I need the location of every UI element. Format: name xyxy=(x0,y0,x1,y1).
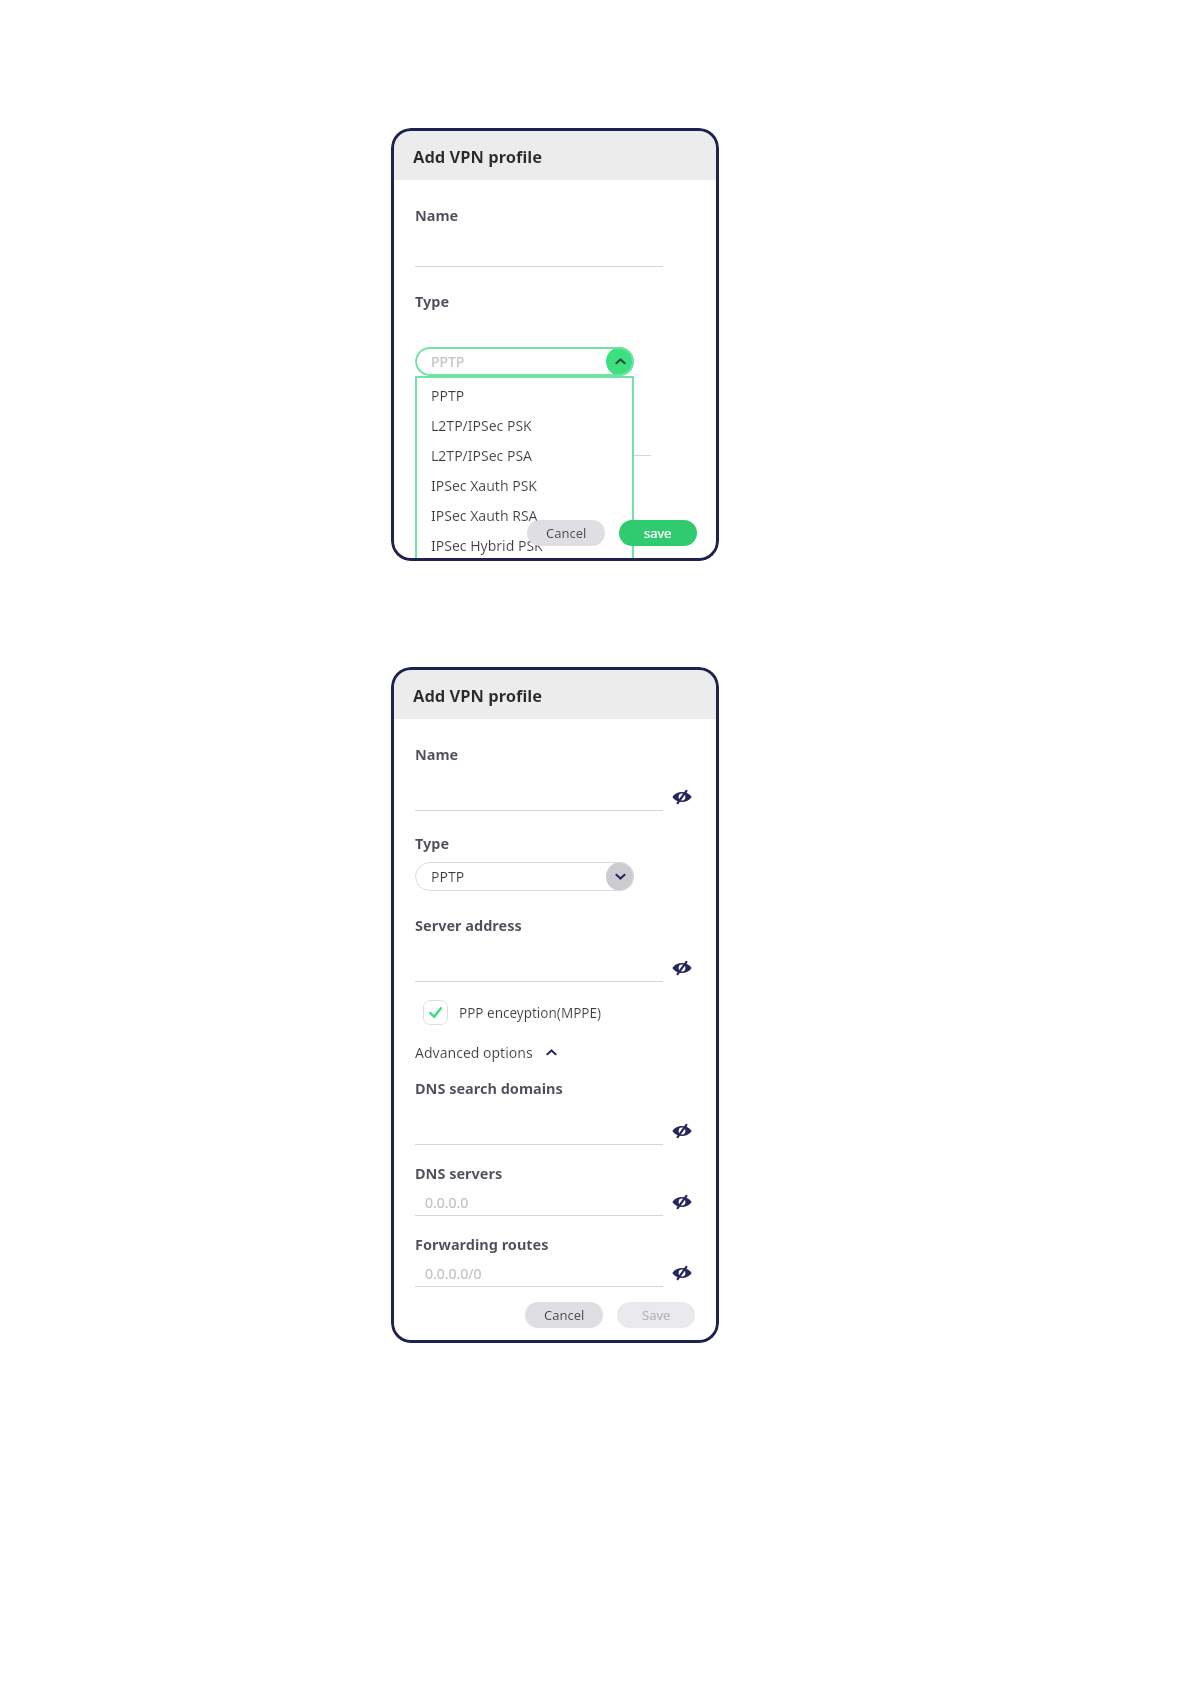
staticText: DNS search domains xyxy=(415,1078,563,1098)
button[interactable]: Cancel xyxy=(525,1302,603,1328)
staticText: L2TP/IPSec PSK xyxy=(431,416,532,435)
staticText: Forwarding routes xyxy=(415,1234,549,1254)
button[interactable]: Toggle visibility xyxy=(669,1260,695,1286)
staticText: DNS servers xyxy=(415,1163,503,1183)
staticText: Cancel xyxy=(544,1306,585,1324)
staticText: Type xyxy=(415,833,450,853)
button[interactable]: IPSec Hybrid PSK xyxy=(415,530,634,558)
staticText: Advanced options xyxy=(415,1043,533,1062)
button[interactable]: Toggle visibility xyxy=(669,955,695,981)
button[interactable]: Cancel xyxy=(527,520,605,546)
staticText: Name xyxy=(415,744,459,764)
staticText: Name xyxy=(415,205,459,225)
button[interactable]: L2TP/IPSec PSK xyxy=(415,410,634,440)
button[interactable]: save xyxy=(619,520,697,546)
button[interactable]: IPSec Xauth PSK xyxy=(415,470,634,500)
staticText: L2TP/IPSec PSA xyxy=(431,446,533,465)
button[interactable]: PPP enceyption(MPPE) xyxy=(423,1000,602,1025)
staticText: PPTP xyxy=(431,386,465,405)
button[interactable]: Advanced options xyxy=(415,1043,558,1062)
staticText: Cancel xyxy=(546,524,587,542)
button[interactable]: PPTP xyxy=(415,862,634,891)
button[interactable]: Save xyxy=(617,1302,695,1328)
button[interactable]: IPSec Xauth RSA xyxy=(415,500,634,530)
staticText: IPSec Xauth PSK xyxy=(431,476,538,495)
staticText: PPTP xyxy=(431,867,465,886)
button[interactable]: Toggle visibility xyxy=(669,1118,695,1144)
staticText: Server address xyxy=(415,915,522,935)
button[interactable]: L2TP/IPSec PSA xyxy=(415,440,634,470)
staticText: 0.0.0.0/0 xyxy=(425,1264,482,1283)
button[interactable]: Toggle visibility xyxy=(669,1189,695,1215)
staticText: PPP enceyption(MPPE) xyxy=(459,1004,602,1022)
button[interactable]: Toggle visibility xyxy=(669,784,695,810)
staticText: Add VPN profile xyxy=(413,684,543,706)
button[interactable]: PPTP xyxy=(415,347,634,376)
staticText: save xyxy=(644,524,672,542)
staticText: Add VPN profile xyxy=(413,145,543,167)
staticText: IPSec Hybrid PSK xyxy=(431,536,543,555)
staticText: IPSec Xauth RSA xyxy=(431,506,538,525)
staticText: PPTP xyxy=(431,352,465,371)
button[interactable]: PPTP xyxy=(415,380,634,410)
staticText: Save xyxy=(642,1306,671,1324)
staticText: 0.0.0.0 xyxy=(425,1193,469,1212)
staticText: Type xyxy=(415,291,450,311)
